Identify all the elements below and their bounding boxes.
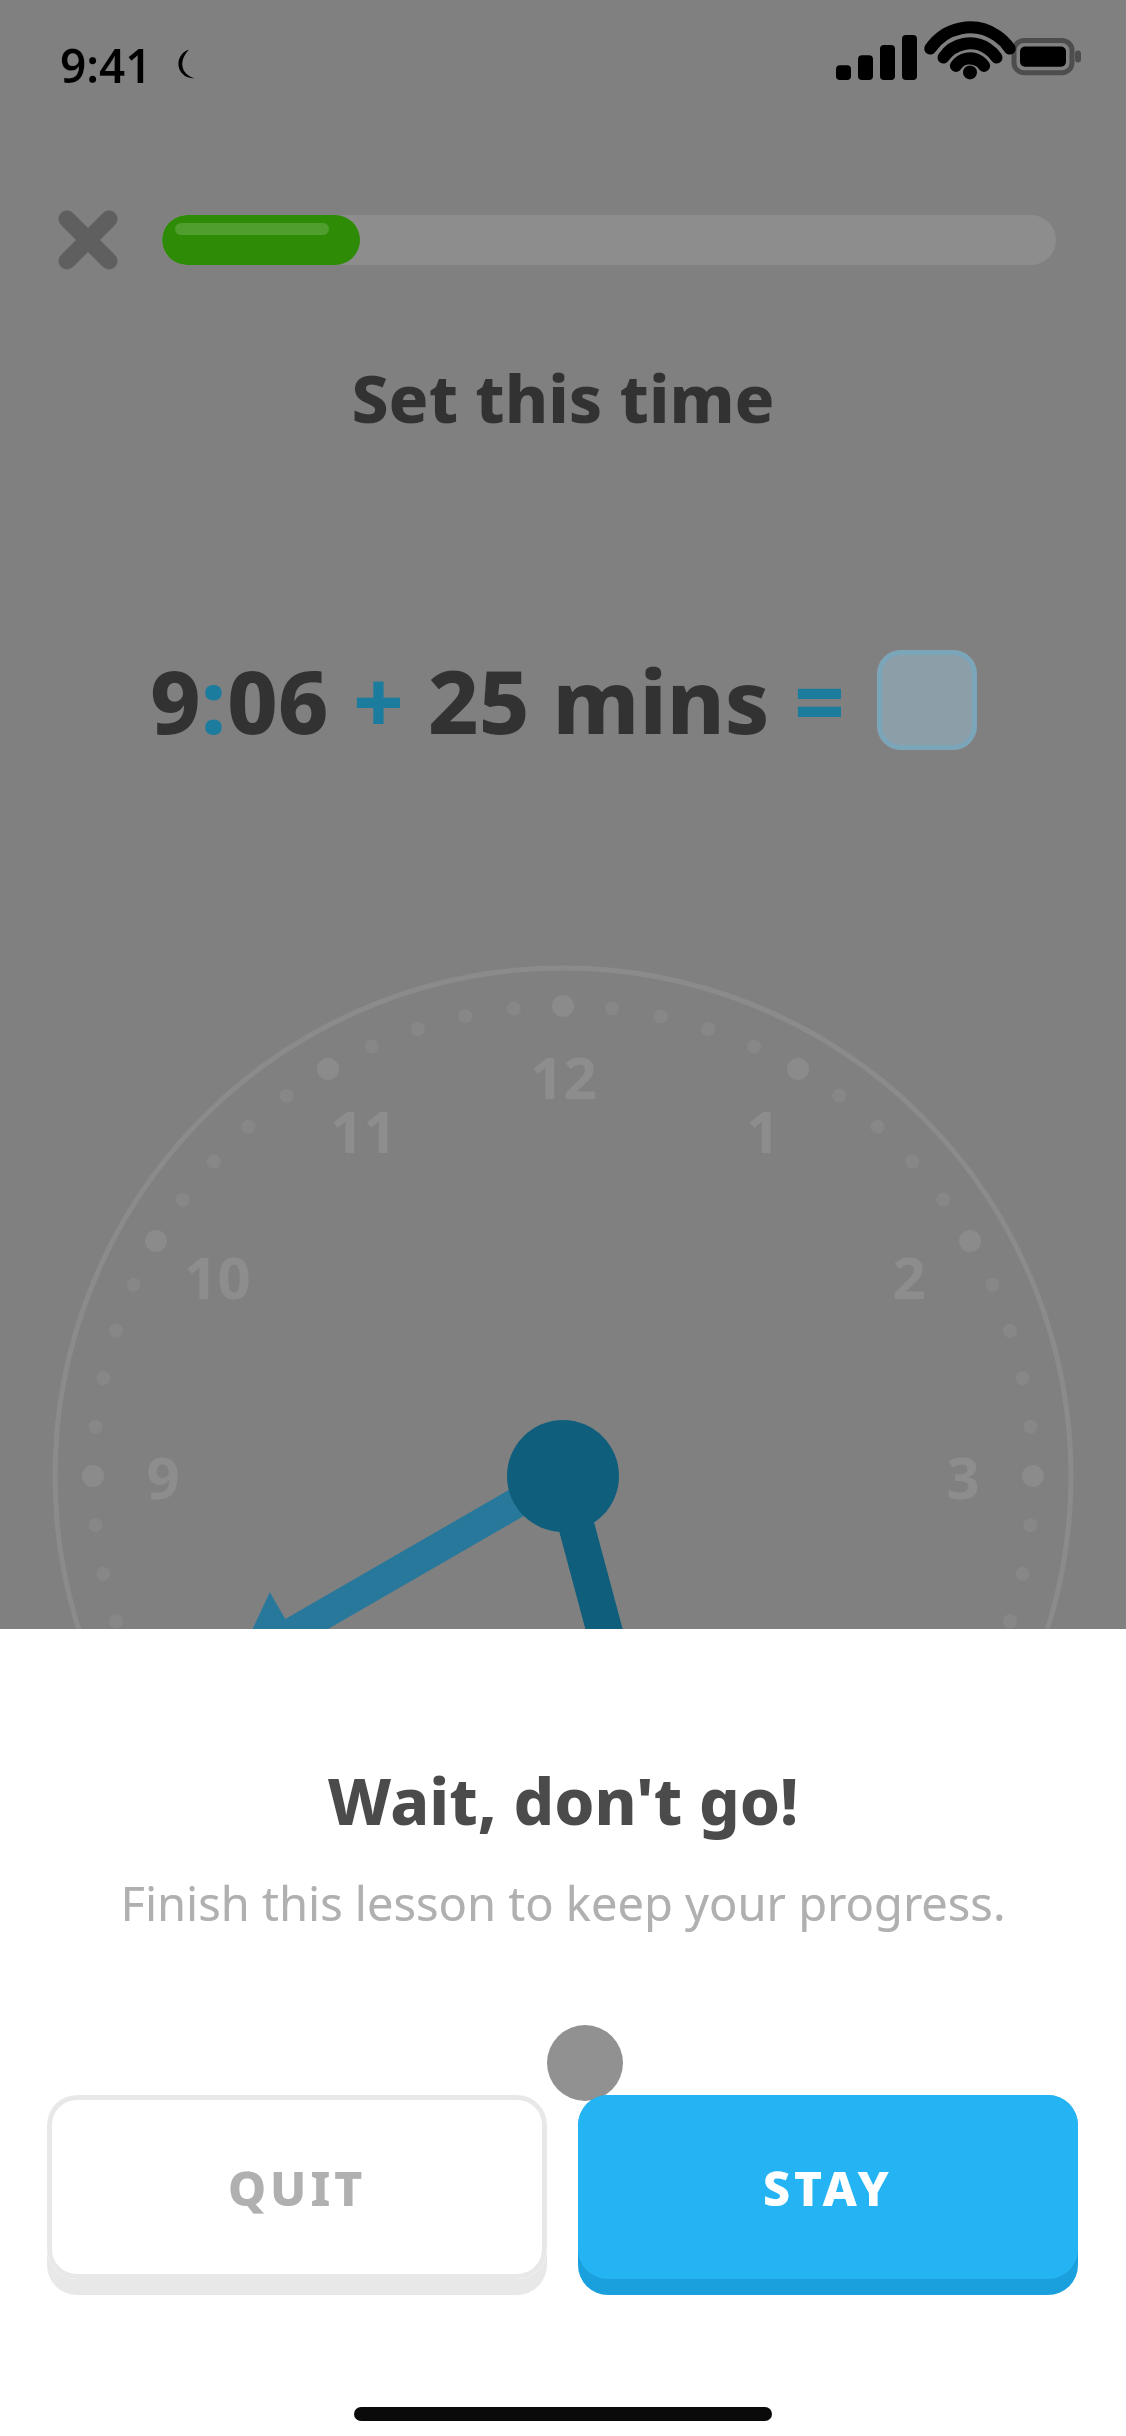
staticText: QUIT: [228, 2155, 367, 2220]
staticText: 7: [346, 1783, 380, 1862]
staticText: 25 mins: [428, 640, 770, 760]
staticText: :: [201, 640, 227, 760]
staticText: Set this time: [0, 352, 1126, 442]
staticText: 11: [330, 1091, 397, 1170]
staticText: 9:41: [60, 34, 152, 97]
staticText: 06: [227, 640, 329, 760]
button[interactable]: Close lesson: [40, 192, 136, 288]
staticText: 9: [150, 640, 201, 760]
staticText: 6: [546, 1837, 580, 1916]
staticText: =: [794, 640, 845, 760]
staticText: Finish this lesson to keep your progress…: [0, 1871, 1126, 1935]
staticText: 3: [946, 1437, 980, 1516]
staticText: 10: [184, 1237, 251, 1316]
staticText: 12: [530, 1037, 597, 1116]
button[interactable]: STAY: [578, 2095, 1078, 2295]
button[interactable]: QUIT: [47, 2095, 547, 2295]
button[interactable]: Answer slot: [877, 650, 977, 750]
staticText: +: [353, 640, 404, 760]
staticText: 2: [892, 1237, 926, 1316]
staticText: 1: [746, 1091, 780, 1170]
staticText: Wait, don't go!: [0, 1757, 1126, 1844]
staticText: STAY: [763, 2155, 893, 2220]
staticText: 9: [146, 1437, 180, 1516]
staticText: 5: [746, 1783, 780, 1862]
